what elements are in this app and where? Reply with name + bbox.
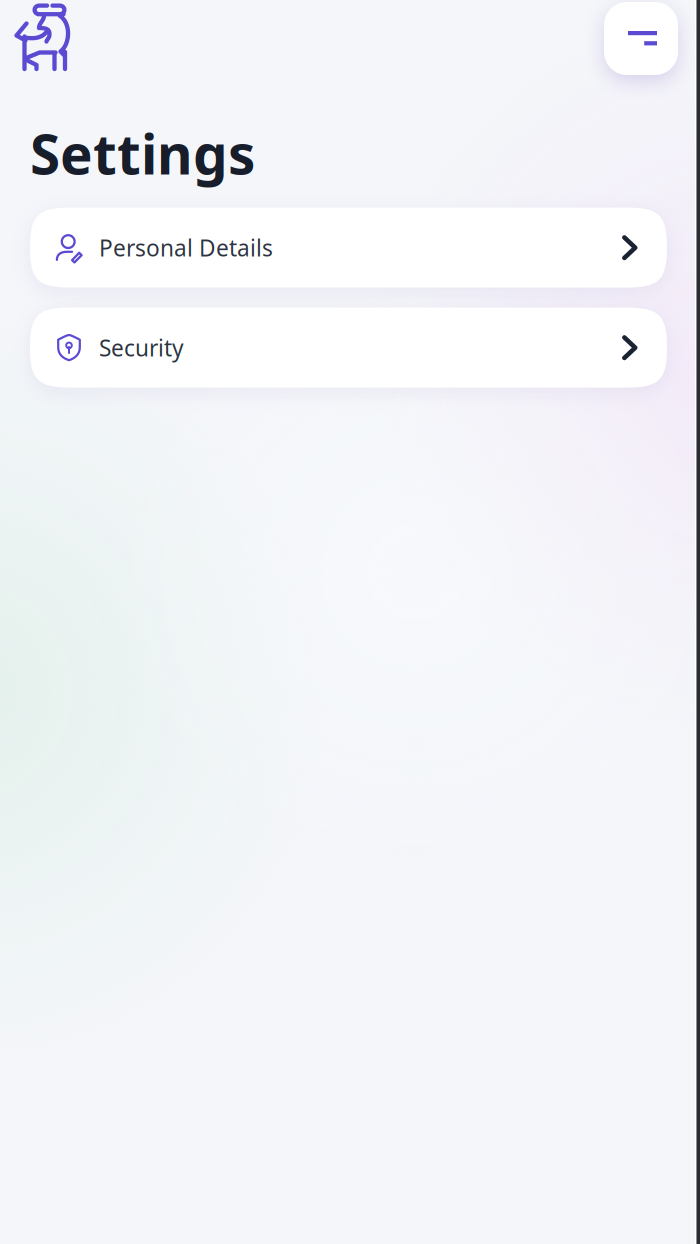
button[interactable]: Security <box>30 308 667 388</box>
staticText: Security <box>99 332 184 363</box>
staticText: Settings <box>30 117 255 190</box>
button[interactable]: Personal Details <box>30 208 667 288</box>
button[interactable]: Menu <box>604 2 678 75</box>
staticText: Personal Details <box>99 232 273 263</box>
